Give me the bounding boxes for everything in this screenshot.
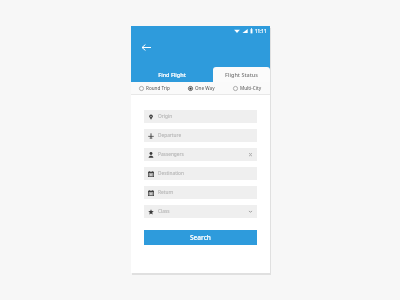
button[interactable]: Back (139, 40, 153, 54)
button[interactable]: Origin (144, 110, 257, 123)
button[interactable]: One Way (178, 82, 224, 94)
staticText: Multi-City (240, 85, 262, 91)
staticText: Find Flight (158, 71, 186, 78)
button[interactable]: Class (144, 205, 257, 218)
button[interactable]: Search (144, 230, 257, 245)
staticText: Departure (158, 132, 182, 139)
staticText: Search (190, 233, 211, 242)
staticText: Flight Status (225, 71, 258, 78)
button[interactable]: Round Trip (131, 82, 178, 94)
button[interactable]: Passengers (144, 148, 257, 161)
button[interactable]: Flight Status (213, 67, 270, 82)
button[interactable]: Departure (144, 129, 257, 142)
staticText: 11:11 (255, 28, 267, 34)
staticText: Destination (158, 170, 184, 177)
staticText: Class (158, 208, 170, 215)
button[interactable]: Destination (144, 167, 257, 180)
button[interactable]: Multi-City (224, 82, 270, 94)
button[interactable]: Return (144, 186, 257, 199)
staticText: Round Trip (146, 85, 170, 91)
staticText: Origin (158, 113, 173, 120)
button[interactable]: Find Flight (131, 67, 213, 82)
staticText: Passengers (158, 151, 184, 158)
staticText: One Way (195, 85, 215, 91)
staticText: Return (158, 189, 174, 196)
